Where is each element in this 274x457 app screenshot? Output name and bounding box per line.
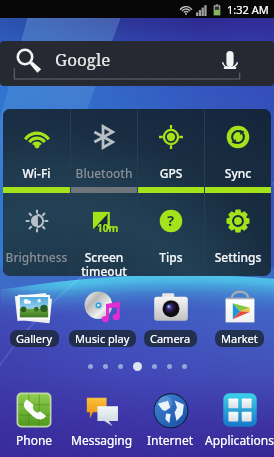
staticText: Gallery [16, 331, 53, 346]
button[interactable]: Music play [68, 288, 136, 347]
staticText: Market [221, 331, 258, 346]
staticText: GPS [138, 165, 204, 181]
staticText: 10m [97, 221, 119, 235]
button[interactable]: Applications [205, 391, 274, 448]
button[interactable]: Internet [136, 391, 205, 448]
staticText: 1:32 AM [227, 2, 269, 17]
button[interactable]: Messaging [68, 391, 136, 448]
button[interactable]: GPS [138, 109, 204, 193]
staticText: Applications [205, 432, 274, 448]
staticText: Settings [205, 249, 271, 265]
button[interactable]: Market [205, 288, 274, 347]
button[interactable]: Wi-Fi [3, 109, 70, 193]
staticText: Brightness [3, 249, 70, 265]
staticText: Music play [75, 331, 130, 346]
staticText: ? [167, 210, 175, 230]
button[interactable]: Phone [0, 391, 68, 448]
button[interactable]: ? [138, 193, 204, 276]
staticText: Bluetooth [71, 165, 137, 181]
staticText: Sync [205, 165, 271, 181]
staticText: Internet [147, 432, 194, 448]
button[interactable]: Google [0, 41, 274, 86]
staticText: Google [55, 48, 111, 71]
button[interactable]: Bluetooth [71, 109, 137, 193]
button[interactable]: Camera [136, 288, 205, 347]
staticText: Tips [138, 249, 204, 265]
button[interactable]: Sync [205, 109, 271, 193]
staticText: Camera [150, 331, 191, 346]
button[interactable]: 10m [71, 193, 137, 276]
button[interactable]: Settings [205, 193, 271, 276]
button[interactable]: Voice search [218, 59, 244, 85]
button[interactable]: Gallery [0, 288, 68, 347]
button[interactable]: Brightness [3, 193, 70, 276]
staticText: Messaging [71, 432, 133, 448]
staticText: Phone [16, 432, 53, 448]
staticText: Wi-Fi [3, 165, 70, 181]
staticText: Screen timeout [71, 249, 137, 276]
